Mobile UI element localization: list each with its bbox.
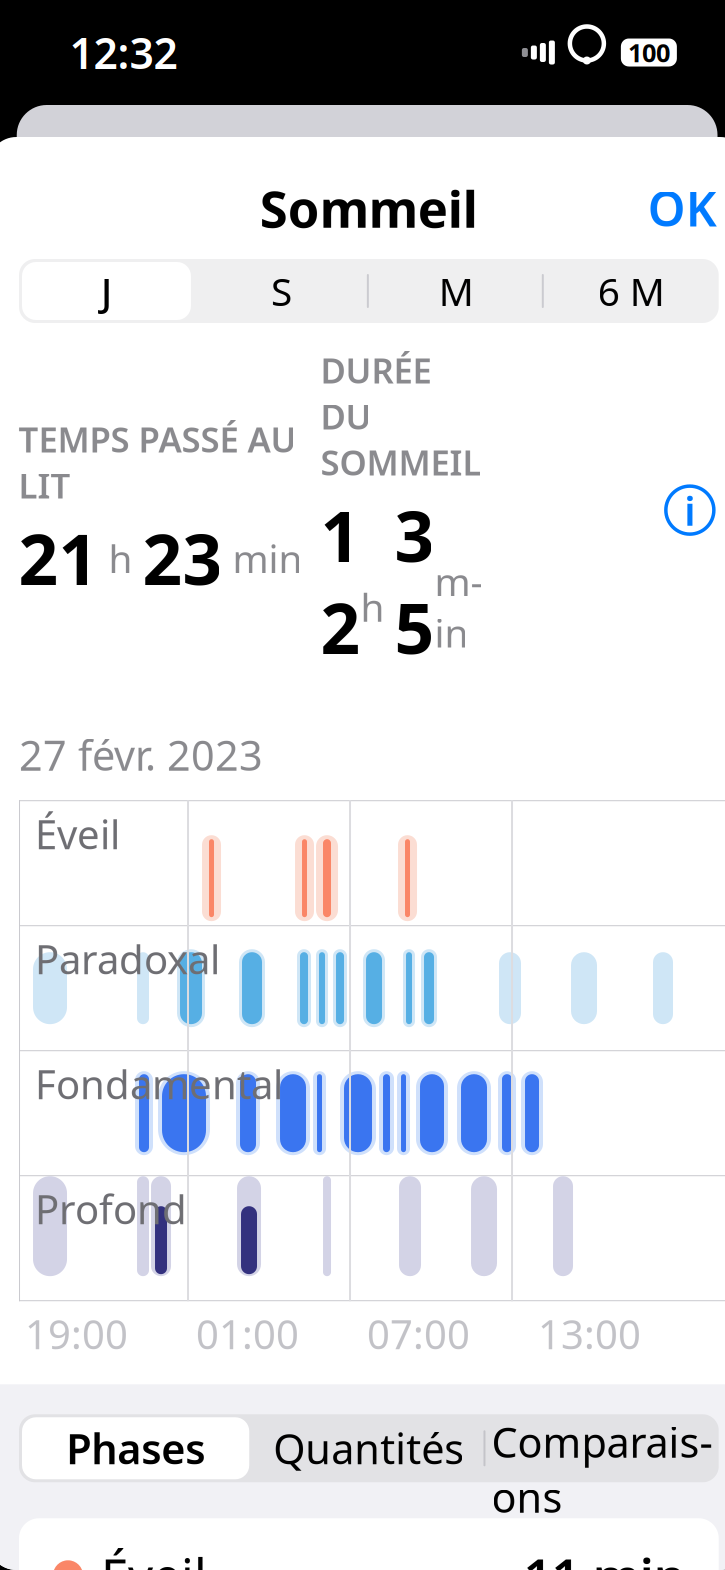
button[interactable]: J [19,259,194,323]
button[interactable]: 6 M [544,259,719,323]
staticText: Paradoxal [35,932,220,985]
staticText: J [101,265,112,317]
staticText: 13:00 [538,1307,641,1360]
button[interactable]: S [194,259,369,323]
staticText: Éveil [35,807,120,860]
staticText: M [439,265,474,317]
staticText: 07:00 [367,1307,470,1360]
staticText: i [684,484,695,537]
staticText: 35 [394,489,434,673]
button[interactable]: Phases [19,1414,252,1482]
staticText: Sommeil [260,174,478,242]
staticText: DURÉE DU SOMMEIL [320,347,481,485]
staticText: Phases [66,1421,205,1476]
staticText: Profond [35,1182,187,1235]
staticText: Comparaisons [492,1414,713,1482]
staticText: S [271,265,292,317]
staticText: 21 [18,512,98,604]
staticText: h [360,530,394,632]
button[interactable]: M [369,259,544,323]
staticText: OK [648,176,717,240]
staticText: min [434,504,482,658]
staticText: TEMPS PASSÉ AU LIT [18,416,296,508]
staticText: 12:32 [69,24,177,81]
staticText: 12 [320,489,360,673]
button[interactable]: Éveil [19,1518,719,1570]
staticText: 27 févr. 2023 [19,727,263,782]
staticText: Fondamental [35,1057,283,1110]
staticText: 100 [628,36,670,69]
staticText: Éveil [101,1542,207,1570]
staticText: min [222,532,302,584]
staticText: 19:00 [25,1307,128,1360]
staticText: 6 M [598,265,665,317]
button[interactable]: OK [628,162,725,254]
staticText: 01:00 [196,1307,299,1360]
staticText: Quantités [273,1421,464,1476]
button[interactable]: Quantités [252,1414,485,1482]
staticText: 11 min [524,1542,685,1570]
button[interactable]: Comparaisons [485,1414,719,1482]
staticText: 23 [142,512,222,604]
button[interactable]: Informations [660,480,720,540]
staticText: h [98,532,142,584]
